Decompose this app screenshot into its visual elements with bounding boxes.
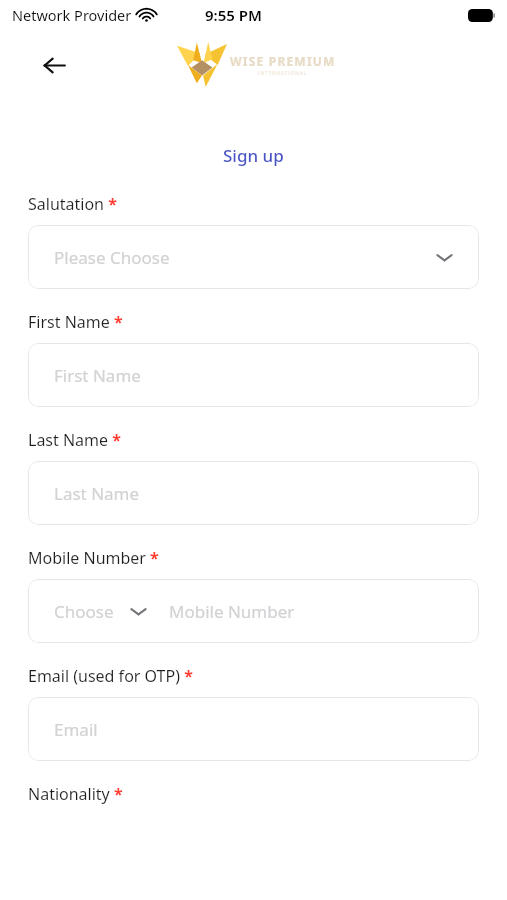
staticText: Sign up: [223, 144, 284, 167]
button[interactable]: Please Choose: [28, 225, 479, 289]
staticText: Email (used for OTP) *: [28, 665, 193, 687]
staticText: Last Name: [54, 482, 140, 505]
staticText: Please Choose: [54, 246, 170, 269]
staticText: Last Name *: [28, 429, 121, 451]
staticText: Salutation *: [28, 193, 117, 215]
staticText: First Name *: [28, 311, 123, 333]
staticText: WISE PREMIUM: [230, 53, 336, 69]
button[interactable]: Sign up: [223, 144, 284, 167]
staticText: Mobile Number *: [28, 547, 159, 569]
staticText: Email: [54, 718, 98, 741]
staticText: INTERNATIONAL: [258, 70, 308, 77]
button[interactable]: Last Name: [28, 461, 479, 525]
button[interactable]: Email: [28, 697, 479, 761]
staticText: First Name: [54, 364, 141, 387]
staticText: Choose: [54, 600, 114, 623]
button[interactable]: Choose: [28, 579, 479, 643]
button[interactable]: First Name: [28, 343, 479, 407]
staticText: Nationality *: [28, 783, 123, 805]
staticText: 9:55 PM: [205, 5, 262, 25]
staticText: Mobile Number: [169, 600, 295, 623]
button[interactable]: Back: [34, 45, 74, 85]
staticText: Network Provider: [12, 5, 132, 25]
